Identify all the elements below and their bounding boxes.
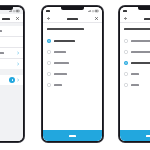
button[interactable] [0,48,23,58]
button[interactable] [43,46,102,57]
button[interactable]: Close [93,15,100,22]
button[interactable] [120,130,150,141]
button[interactable] [43,35,102,46]
button[interactable]: Back [45,15,52,22]
button[interactable] [120,57,150,68]
button[interactable] [120,35,150,46]
button[interactable] [120,79,150,90]
button[interactable] [0,59,23,69]
button[interactable] [0,26,23,36]
button[interactable] [43,79,102,90]
button[interactable] [0,75,23,85]
button[interactable] [120,68,150,79]
button[interactable] [43,130,102,141]
button[interactable]: Close [14,15,21,22]
button[interactable] [120,46,150,57]
button[interactable] [43,57,102,68]
button[interactable] [43,68,102,79]
button[interactable]: Back [122,15,129,22]
